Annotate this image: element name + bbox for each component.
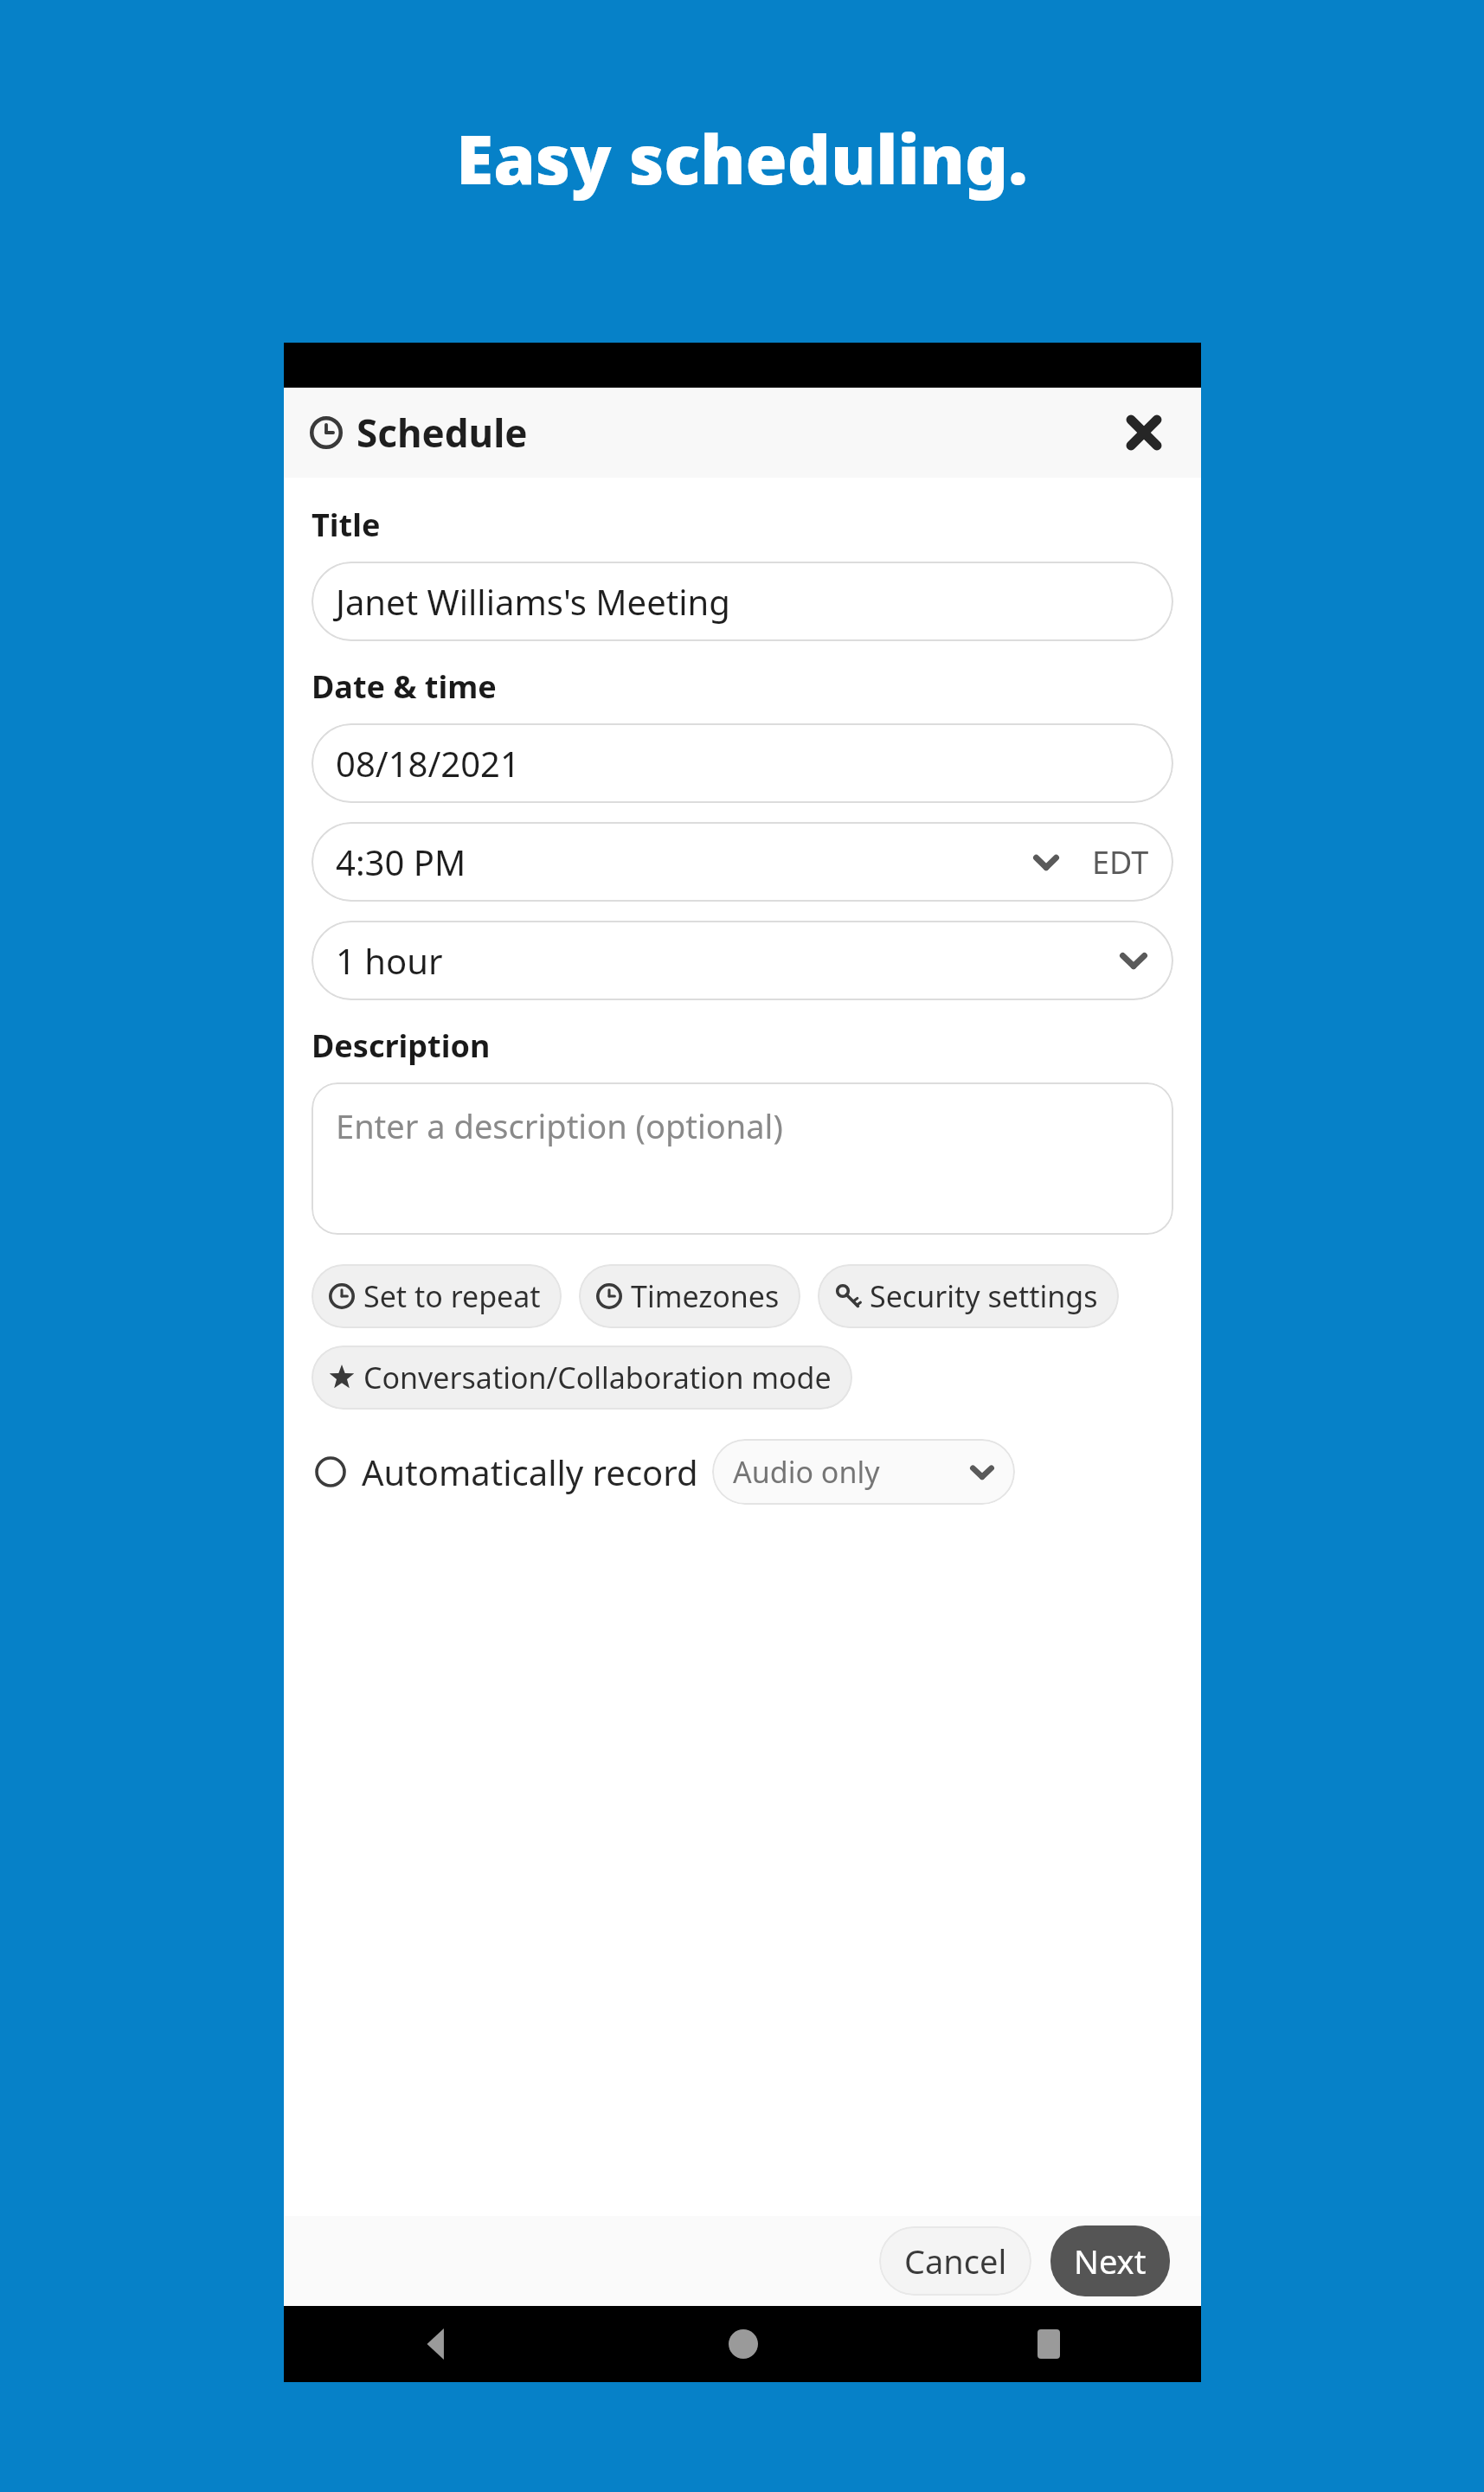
button[interactable]: Next bbox=[1050, 2225, 1170, 2296]
button[interactable]: Home bbox=[590, 2306, 896, 2382]
staticText: Audio only bbox=[733, 1452, 880, 1492]
staticText: Timezones bbox=[631, 1276, 780, 1316]
button[interactable]: Schedule bbox=[310, 401, 528, 464]
staticText: Conversation/Collaboration mode bbox=[363, 1358, 832, 1397]
button[interactable]: Automatically record bbox=[312, 1442, 700, 1502]
staticText: 4:30 PM bbox=[336, 838, 466, 885]
staticText: Next bbox=[1074, 2238, 1147, 2283]
staticText: EDT bbox=[1092, 841, 1149, 883]
button[interactable]: 4:30 PM bbox=[312, 822, 1173, 902]
button[interactable]: Enter a description (optional) bbox=[312, 1082, 1173, 1235]
staticText: Cancel bbox=[904, 2238, 1007, 2283]
staticText: Automatically record bbox=[362, 1448, 698, 1495]
staticText: Easy scheduling. bbox=[456, 112, 1028, 204]
button[interactable]: 1 hour bbox=[312, 921, 1173, 1000]
button[interactable]: Close bbox=[1113, 401, 1175, 464]
button[interactable]: Security settings bbox=[818, 1264, 1119, 1328]
button[interactable]: Back bbox=[284, 2306, 590, 2382]
staticText: 1 hour bbox=[336, 937, 443, 984]
staticText: Title bbox=[312, 504, 381, 546]
staticText: Schedule bbox=[357, 407, 528, 459]
button[interactable]: 08/18/2021 bbox=[312, 723, 1173, 803]
staticText: Janet Williams's Meeting bbox=[336, 578, 730, 625]
button[interactable]: Recent apps bbox=[896, 2306, 1201, 2382]
staticText: Description bbox=[312, 1024, 491, 1067]
staticText: Security settings bbox=[870, 1276, 1098, 1316]
button[interactable]: Timezones bbox=[579, 1264, 800, 1328]
button[interactable]: Cancel bbox=[879, 2226, 1031, 2296]
button[interactable]: Janet Williams's Meeting bbox=[312, 562, 1173, 641]
button[interactable]: Set to repeat bbox=[312, 1264, 562, 1328]
button[interactable]: Conversation/Collaboration mode bbox=[312, 1346, 852, 1410]
button[interactable]: Audio only bbox=[712, 1439, 1015, 1505]
staticText: Date & time bbox=[312, 665, 497, 708]
staticText: 08/18/2021 bbox=[336, 740, 520, 787]
staticText: Enter a description (optional) bbox=[336, 1103, 783, 1148]
staticText: Set to repeat bbox=[363, 1276, 541, 1316]
